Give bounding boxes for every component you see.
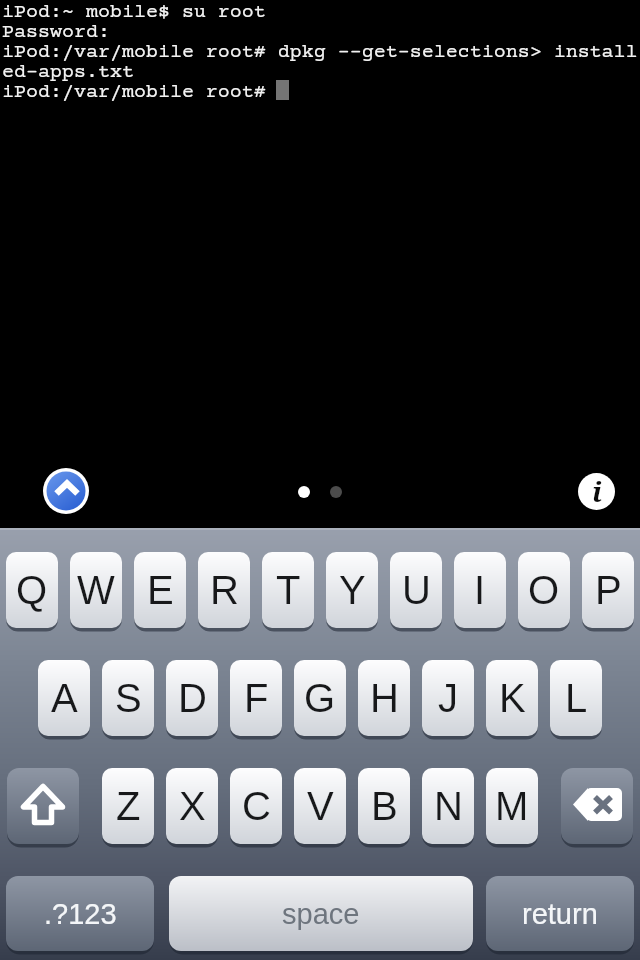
button[interactable]: Q: [6, 552, 58, 628]
staticText: T: [276, 568, 301, 613]
button[interactable]: F: [230, 660, 282, 736]
staticText: i: [592, 473, 602, 509]
button[interactable]: .?123: [6, 876, 154, 951]
staticText: iPod:/var/mobile root#: [2, 81, 266, 103]
staticText: C: [242, 784, 271, 829]
button[interactable]: return: [486, 876, 634, 951]
button[interactable]: Y: [326, 552, 378, 628]
staticText: F: [244, 676, 269, 721]
staticText: Q: [16, 568, 48, 613]
button[interactable]: C: [230, 768, 282, 844]
staticText: P: [595, 568, 622, 613]
staticText: .?123: [44, 898, 117, 930]
button[interactable]: space: [169, 876, 473, 951]
staticText: L: [565, 676, 588, 721]
button[interactable]: U: [390, 552, 442, 628]
staticText: Password:: [2, 21, 110, 43]
staticText: Y: [339, 568, 366, 613]
button[interactable]: A: [38, 660, 90, 736]
staticText: D: [178, 676, 207, 721]
staticText: space: [282, 898, 360, 930]
staticText: R: [210, 568, 239, 613]
staticText: O: [528, 568, 560, 613]
button[interactable]: M: [486, 768, 538, 844]
staticText: M: [495, 784, 529, 829]
button[interactable]: E: [134, 552, 186, 628]
button[interactable]: S: [102, 660, 154, 736]
staticText: N: [434, 784, 463, 829]
button[interactable]: [42, 467, 90, 515]
staticText: W: [77, 568, 115, 613]
button[interactable]: N: [422, 768, 474, 844]
staticText: B: [371, 784, 398, 829]
staticText: X: [179, 784, 206, 829]
button[interactable]: I: [454, 552, 506, 628]
button[interactable]: R: [198, 552, 250, 628]
staticText: iPod:~ mobile$ su root: [2, 1, 266, 23]
staticText: U: [402, 568, 431, 613]
button[interactable]: i: [578, 473, 615, 510]
staticText: E: [147, 568, 174, 613]
staticText: G: [304, 676, 336, 721]
button[interactable]: W: [70, 552, 122, 628]
button[interactable]: [561, 768, 633, 844]
button[interactable]: X: [166, 768, 218, 844]
staticText: A: [51, 676, 78, 721]
staticText: ed-apps.txt: [2, 61, 134, 83]
button[interactable]: P: [582, 552, 634, 628]
button[interactable]: O: [518, 552, 570, 628]
button[interactable]: B: [358, 768, 410, 844]
button[interactable]: H: [358, 660, 410, 736]
button[interactable]: K: [486, 660, 538, 736]
button[interactable]: Z: [102, 768, 154, 844]
staticText: J: [438, 676, 458, 721]
button[interactable]: [7, 768, 79, 844]
button[interactable]: V: [294, 768, 346, 844]
staticText: K: [499, 676, 526, 721]
staticText: iPod:/var/mobile root# dpkg --get-select…: [2, 41, 638, 63]
staticText: return: [522, 898, 598, 930]
staticText: H: [370, 676, 399, 721]
button[interactable]: G: [294, 660, 346, 736]
button[interactable]: D: [166, 660, 218, 736]
staticText: S: [115, 676, 142, 721]
staticText: Z: [116, 784, 141, 829]
staticText: V: [307, 784, 334, 829]
staticText: I: [474, 568, 486, 613]
button[interactable]: T: [262, 552, 314, 628]
button[interactable]: L: [550, 660, 602, 736]
button[interactable]: J: [422, 660, 474, 736]
